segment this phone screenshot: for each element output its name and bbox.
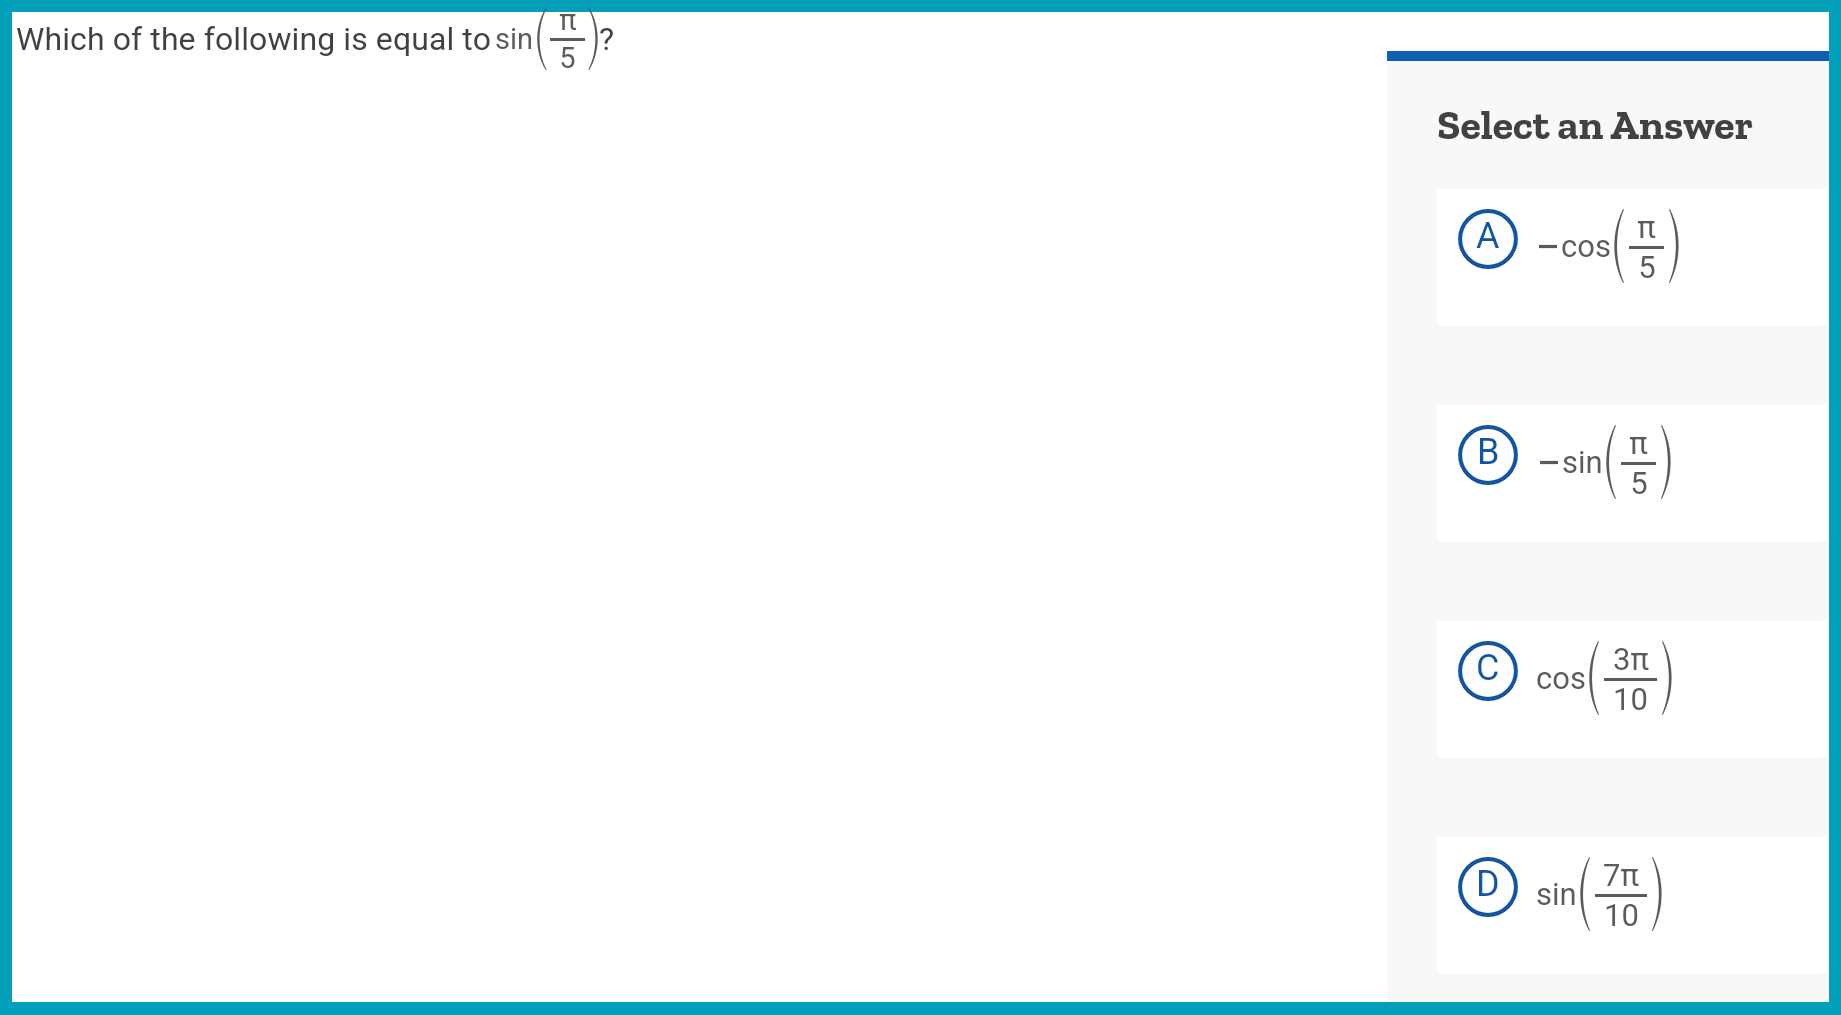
staticText: cos <box>1536 660 1586 696</box>
staticText: D <box>1476 863 1500 905</box>
staticText: 10 <box>1613 681 1648 715</box>
staticText: A <box>1476 215 1500 257</box>
staticText: 5 <box>1630 465 1648 499</box>
staticText: π <box>559 3 577 37</box>
staticText: sin <box>1536 876 1577 912</box>
staticText: 10 <box>1604 897 1639 931</box>
staticText: sin <box>1562 444 1603 480</box>
staticText: π <box>1637 209 1656 245</box>
staticText: 3π <box>1613 641 1649 677</box>
staticText: ? <box>599 20 615 58</box>
staticText: 7π <box>1603 857 1639 893</box>
button[interactable]: Answer B: -sin of π over 5 <box>1437 405 1829 541</box>
staticText: Which of the following is equal to <box>16 20 491 58</box>
button[interactable]: Answer D: sin of 7π over 10 <box>1437 837 1829 973</box>
staticText: B <box>1477 431 1500 473</box>
staticText: 5 <box>559 41 576 75</box>
button[interactable]: Answer A: -cos of π over 5 <box>1437 189 1829 325</box>
staticText: 5 <box>1638 249 1656 283</box>
staticText: π <box>1629 425 1648 461</box>
button[interactable]: Answer C: cos of 3π over 10 <box>1437 621 1829 757</box>
staticText: C <box>1476 647 1500 689</box>
staticText: sin <box>495 22 534 56</box>
staticText: Select an Answer <box>1437 99 1754 149</box>
staticText: cos <box>1561 228 1611 264</box>
